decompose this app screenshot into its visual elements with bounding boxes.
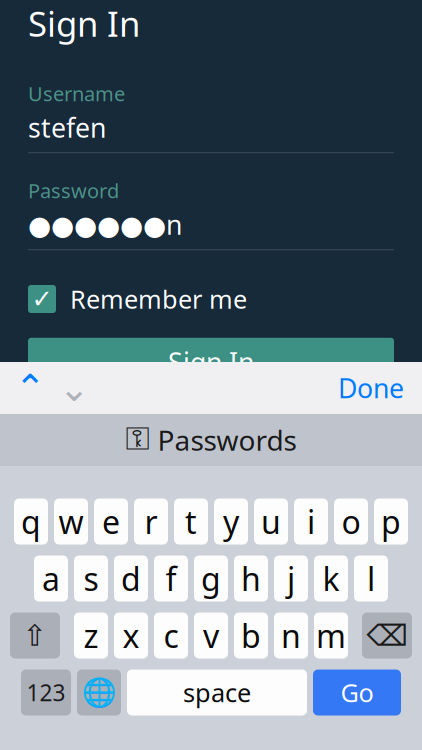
staticText: ✓ <box>31 285 52 313</box>
button[interactable]: w <box>54 498 88 544</box>
button[interactable]: p <box>374 498 408 544</box>
staticText: k <box>322 557 339 600</box>
staticText: o <box>341 500 360 543</box>
button[interactable]: Go <box>313 669 401 715</box>
button[interactable]: f <box>154 555 188 601</box>
button[interactable]: j <box>274 555 308 601</box>
staticText: i <box>307 500 315 543</box>
staticText: s <box>83 557 98 600</box>
button[interactable]: ⇧ <box>10 612 60 658</box>
staticText: Done <box>338 370 404 406</box>
button[interactable]: r <box>134 498 168 544</box>
staticText: ●●●●●●n <box>28 207 182 242</box>
staticText: y <box>223 500 239 543</box>
staticText: d <box>121 557 141 600</box>
button[interactable]: u <box>254 498 288 544</box>
staticText: u <box>261 500 281 543</box>
staticText: q <box>21 500 41 543</box>
staticText: ⇧ <box>22 619 47 652</box>
button[interactable]: d <box>114 555 148 601</box>
staticText: r <box>144 500 157 543</box>
button[interactable]: ✓ <box>0 282 422 316</box>
staticText: Username <box>28 80 125 107</box>
staticText: Remember me <box>70 282 247 316</box>
staticText: Password <box>28 177 119 204</box>
staticText: space <box>183 676 251 709</box>
staticText: x <box>122 614 139 657</box>
staticText: 123 <box>26 677 65 707</box>
button[interactable]: Previous field <box>8 365 52 411</box>
staticText: f <box>165 557 176 600</box>
button[interactable]: s <box>74 555 108 601</box>
staticText: v <box>203 614 219 657</box>
button[interactable]: l <box>354 555 388 601</box>
staticText: ⌃ <box>14 367 45 409</box>
button[interactable]: Sign In <box>0 338 422 386</box>
staticText: j <box>287 557 295 600</box>
button[interactable]: ⚿ <box>0 414 422 466</box>
button[interactable]: space <box>127 669 307 715</box>
button[interactable]: m <box>314 612 348 658</box>
staticText: ⚿ <box>125 424 149 456</box>
button[interactable]: 123 <box>21 669 71 715</box>
staticText: p <box>381 500 401 543</box>
staticText: l <box>367 557 375 600</box>
staticText: m <box>316 614 346 657</box>
staticText: Passwords <box>157 421 296 459</box>
staticText: c <box>163 614 178 657</box>
button[interactable]: c <box>154 612 188 658</box>
button[interactable]: 🌐 <box>77 669 121 715</box>
button[interactable]: n <box>274 612 308 658</box>
staticText: Go <box>340 676 373 709</box>
button[interactable]: x <box>114 612 148 658</box>
staticText: stefen <box>28 110 106 145</box>
button[interactable]: b <box>234 612 268 658</box>
staticText: h <box>241 557 261 600</box>
staticText: n <box>281 614 301 657</box>
button[interactable]: a <box>34 555 68 601</box>
button[interactable]: k <box>314 555 348 601</box>
button[interactable]: z <box>74 612 108 658</box>
button[interactable]: q <box>14 498 48 544</box>
staticText: 🌐 <box>81 676 116 708</box>
button[interactable]: g <box>194 555 228 601</box>
button[interactable]: t <box>174 498 208 544</box>
staticText: e <box>102 500 120 543</box>
staticText: Sign In <box>28 0 140 46</box>
button[interactable]: i <box>294 498 328 544</box>
staticText: g <box>201 557 221 600</box>
button[interactable]: v <box>194 612 228 658</box>
button[interactable]: Done <box>320 365 422 411</box>
button[interactable]: o <box>334 498 368 544</box>
button[interactable]: ⌫ <box>362 612 412 658</box>
staticText: ⌫ <box>366 619 407 652</box>
staticText: a <box>42 557 60 600</box>
button[interactable]: Next field <box>52 365 96 411</box>
staticText: ⌄ <box>58 367 89 409</box>
button[interactable]: h <box>234 555 268 601</box>
staticText: t <box>185 500 197 543</box>
button[interactable]: e <box>94 498 128 544</box>
staticText: Sign In <box>168 344 254 379</box>
staticText: z <box>83 614 98 657</box>
button[interactable]: y <box>214 498 248 544</box>
staticText: b <box>241 614 261 657</box>
staticText: w <box>58 500 83 543</box>
